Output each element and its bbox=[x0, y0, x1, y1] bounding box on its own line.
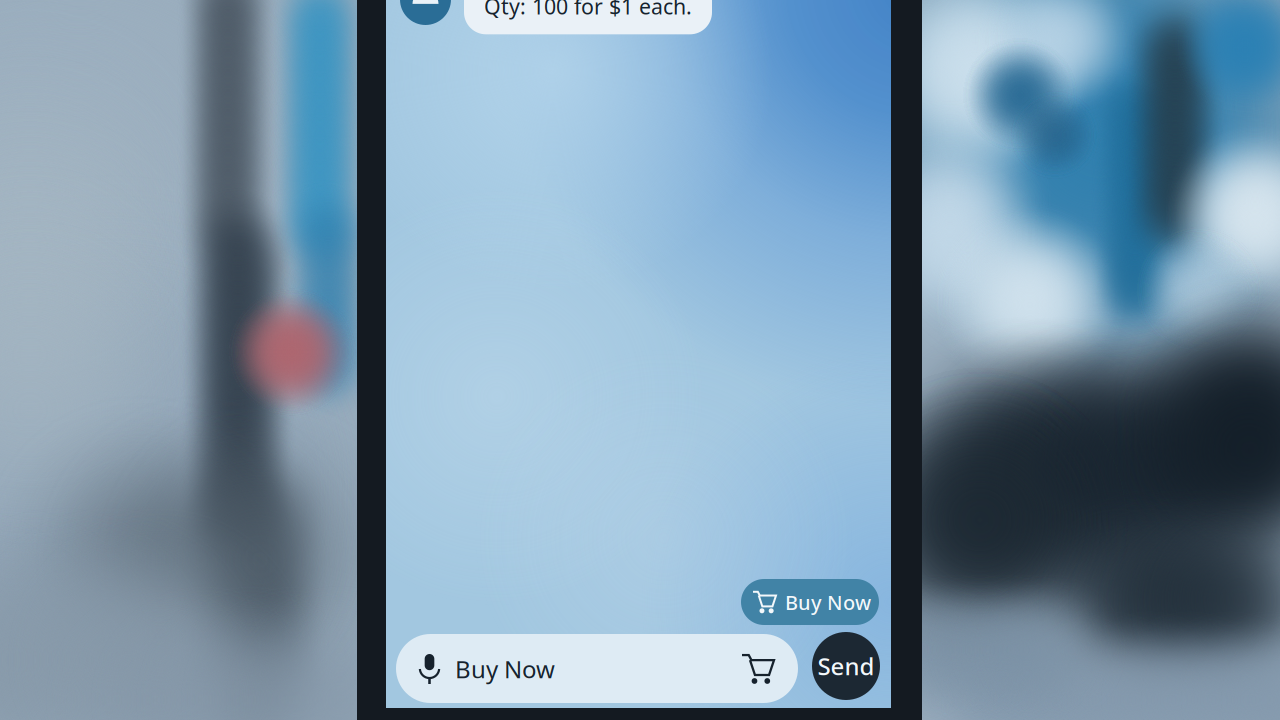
staticText: Buy Now bbox=[785, 589, 871, 616]
staticText: Send bbox=[817, 650, 874, 682]
button[interactable]: Send bbox=[812, 632, 880, 700]
button[interactable]: Buy Now bbox=[741, 579, 879, 625]
staticText: Qty: 100 for $1 each. bbox=[484, 0, 692, 20]
staticText: Buy Now bbox=[455, 653, 555, 685]
